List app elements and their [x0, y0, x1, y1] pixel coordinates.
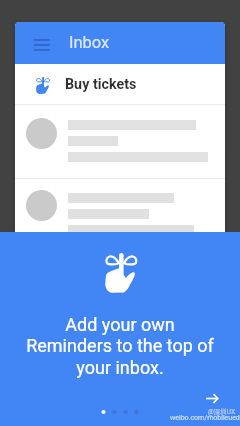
button[interactable]: Page 2 — [109, 406, 120, 418]
button[interactable]: Buy tickets — [15, 64, 225, 104]
staticText: Inbox — [69, 33, 110, 52]
button[interactable]: Page 4 — [131, 406, 142, 418]
staticText: Add your own Reminders to the top of you… — [0, 314, 240, 379]
staticText: weibo.com/mobileued — [170, 414, 240, 422]
button[interactable]: Next — [202, 388, 222, 408]
staticText: @深圳UX — [208, 408, 236, 416]
button[interactable]: Page 1 — [98, 406, 109, 418]
button[interactable]: Page 3 — [120, 406, 131, 418]
button[interactable]: Open navigation menu — [27, 30, 57, 60]
button[interactable] — [15, 179, 225, 252]
staticText: Buy tickets — [65, 76, 137, 93]
button[interactable] — [15, 105, 225, 178]
